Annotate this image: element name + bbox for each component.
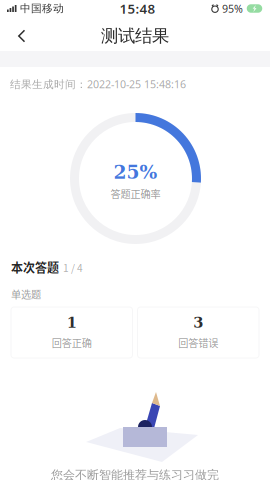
staticText: 回答正确: [52, 335, 92, 350]
staticText: 回答错误: [178, 335, 218, 350]
staticText: 您会不断智能推荐与练习习做完: [51, 468, 219, 480]
button[interactable]: 3: [137, 307, 259, 358]
staticText: 1: [67, 314, 77, 331]
staticText: 1 / 4: [63, 260, 83, 275]
staticText: 测试结果: [101, 25, 169, 47]
staticText: 3: [193, 314, 203, 331]
staticText: 答题正确率: [110, 186, 160, 201]
staticText: 本次答题: [11, 259, 59, 276]
button[interactable]: 1: [11, 307, 132, 358]
staticText: 25%: [113, 161, 157, 183]
staticText: 中国移动: [17, 2, 64, 15]
staticText: 15:48: [119, 0, 155, 17]
staticText: 结果生成时间：2022-10-25 15:48:16: [10, 77, 186, 91]
button[interactable]: 返回: [7, 21, 37, 51]
staticText: 单选题: [11, 287, 41, 301]
staticText: 95%: [219, 1, 246, 16]
